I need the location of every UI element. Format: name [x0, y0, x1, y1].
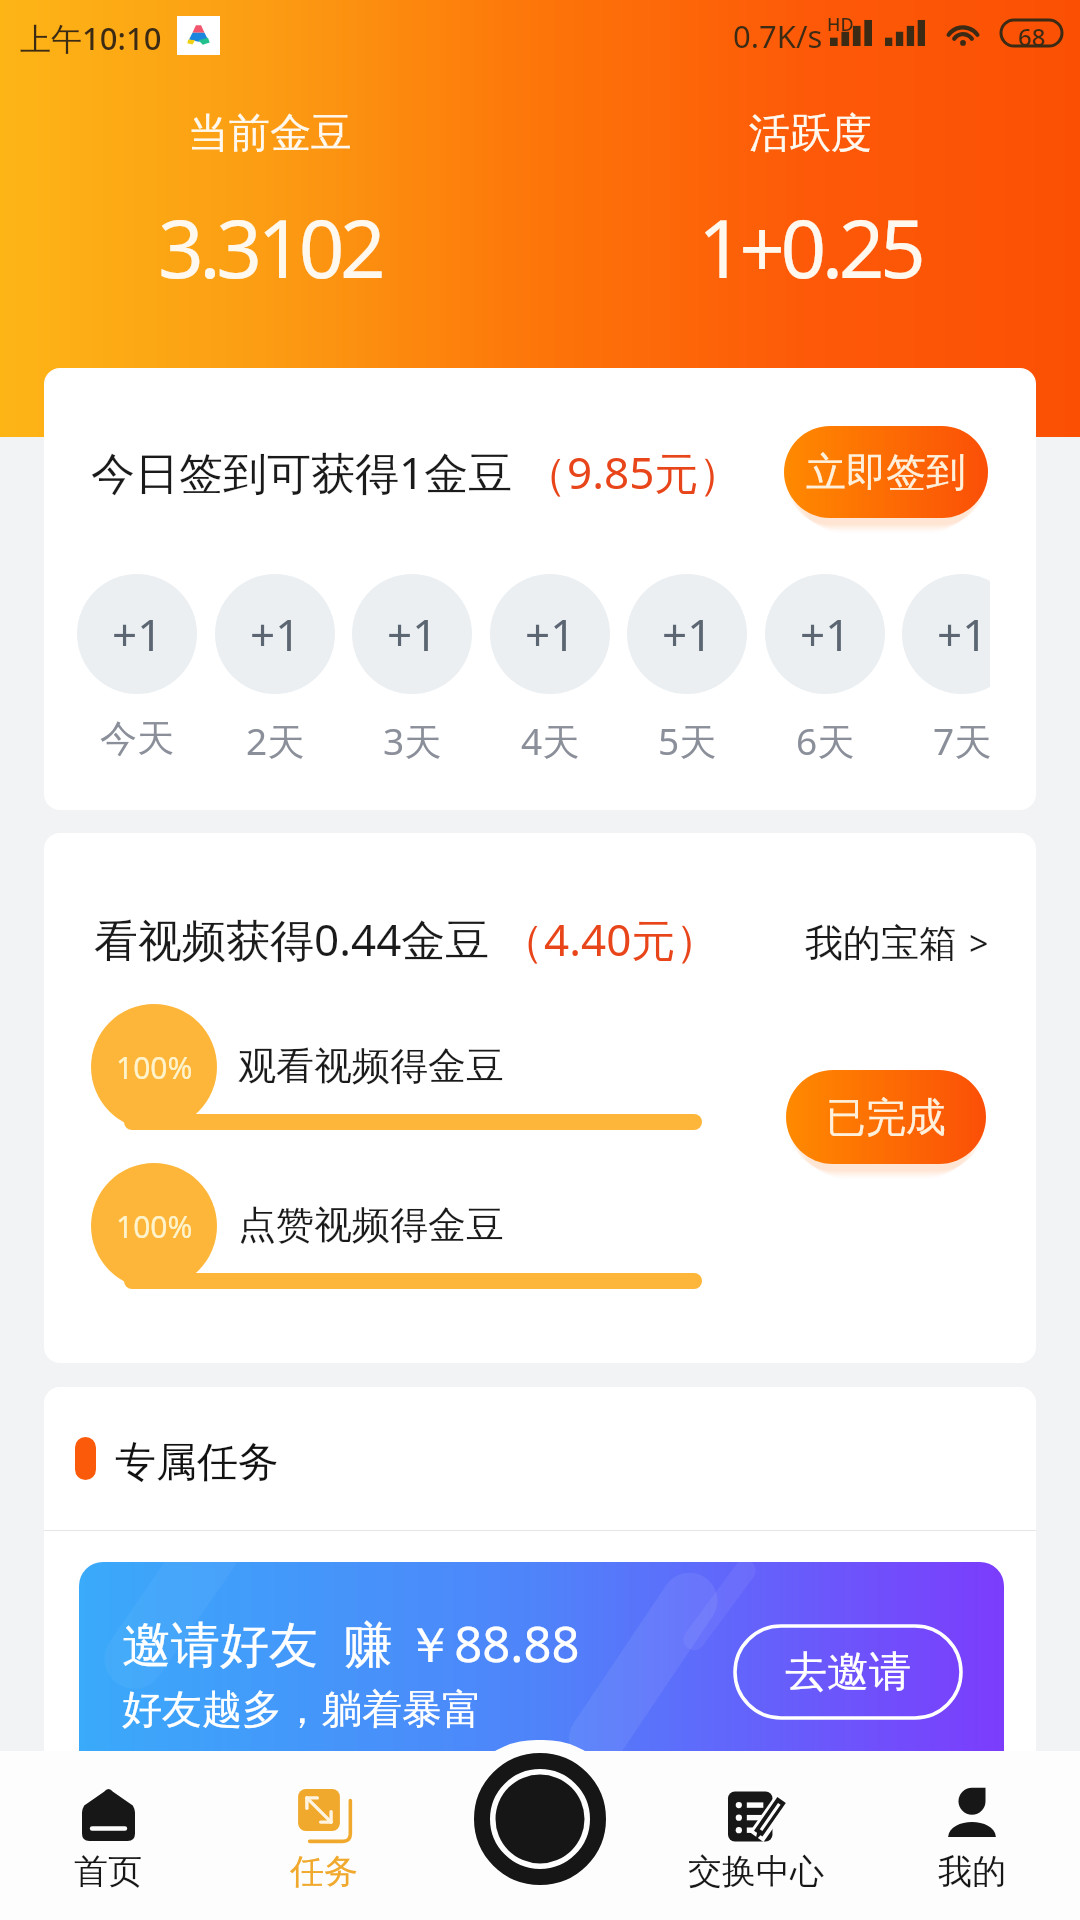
staticText: +1	[112, 604, 163, 664]
staticText: 68	[1018, 20, 1046, 46]
staticText: 7天	[933, 715, 990, 764]
staticText: 看视频获得0.44金豆	[94, 909, 490, 969]
staticText: 2天	[246, 715, 305, 764]
staticText: 1+0.25	[698, 192, 922, 301]
staticText: 我的	[938, 1850, 1006, 1893]
staticText: +1	[800, 604, 851, 664]
staticText: +1	[387, 604, 438, 664]
button[interactable]: 去邀请	[735, 1626, 961, 1718]
staticText: 立即签到	[806, 447, 966, 497]
staticText: 3天	[383, 715, 442, 764]
staticText: 100%	[116, 1047, 193, 1088]
staticText: （4.40元）	[500, 909, 720, 969]
staticText: +1	[250, 604, 301, 664]
staticText: +1	[937, 604, 988, 664]
staticText: HD	[827, 12, 854, 37]
staticText: 当前金豆	[188, 108, 352, 160]
staticText: 6天	[796, 715, 855, 764]
button[interactable]: +1	[490, 574, 610, 694]
staticText: 已完成	[826, 1092, 946, 1142]
staticText: +1	[662, 604, 713, 664]
button[interactable]: 交换中心	[648, 1751, 864, 1920]
staticText: 任务	[290, 1850, 358, 1893]
staticText: 好友越多，躺着暴富	[122, 1684, 482, 1734]
staticText: 观看视频得金豆	[238, 1042, 504, 1090]
staticText: 今天	[100, 715, 174, 762]
staticText: 邀请好友 赚 ￥88.88	[122, 1610, 580, 1677]
button[interactable]: +1	[352, 574, 472, 694]
button[interactable]: +1	[77, 574, 197, 694]
button[interactable]: 立即签到	[784, 426, 988, 518]
button[interactable]: 我的宝箱	[805, 913, 989, 973]
staticText: （9.85元）	[523, 442, 743, 502]
button[interactable]: 首页	[0, 1751, 216, 1920]
staticText: 上午10:10	[20, 17, 162, 59]
staticText: 3.3102	[158, 192, 382, 301]
staticText: 今日签到可获得1金豆	[91, 442, 513, 502]
staticText: 专属任务	[115, 1437, 279, 1489]
button[interactable]: +1	[765, 574, 885, 694]
staticText: 首页	[74, 1850, 142, 1893]
staticText: 交换中心	[688, 1850, 824, 1893]
staticText: 我的宝箱	[805, 919, 957, 967]
staticText: 去邀请	[785, 1646, 911, 1699]
staticText: 点赞视频得金豆	[238, 1201, 504, 1249]
button[interactable]: Record	[452, 1740, 628, 1909]
button[interactable]: 我的	[864, 1751, 1080, 1920]
button[interactable]: +1	[215, 574, 335, 694]
staticText: 4天	[521, 715, 580, 764]
button[interactable]: 邀请好友 赚 ￥88.88	[79, 1562, 1004, 1777]
staticText: 5天	[658, 715, 717, 764]
button[interactable]: +1	[902, 574, 990, 694]
button[interactable]: +1	[627, 574, 747, 694]
staticText: +1	[525, 604, 576, 664]
staticText: >	[969, 920, 989, 966]
button[interactable]: 任务	[216, 1751, 432, 1920]
button[interactable]: 已完成	[786, 1070, 986, 1164]
staticText: 0.7K/s	[733, 15, 823, 57]
staticText: 100%	[116, 1206, 193, 1247]
staticText: 活跃度	[749, 108, 872, 160]
